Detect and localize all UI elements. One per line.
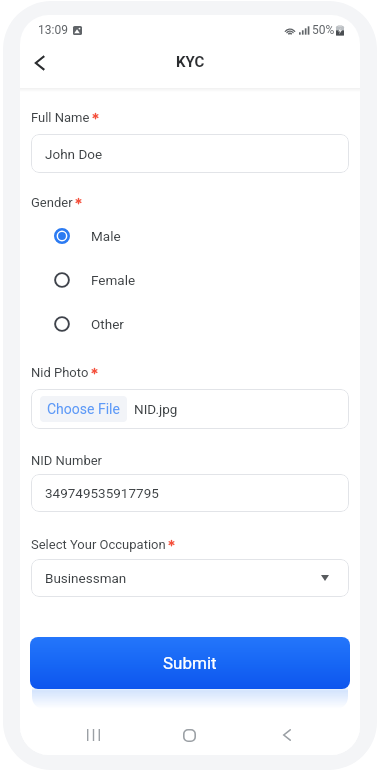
button[interactable]: Female	[31, 258, 349, 302]
button[interactable]: Home	[141, 715, 238, 755]
button[interactable]: Businessman	[31, 559, 349, 597]
staticText: Gender	[31, 195, 73, 210]
button[interactable]: Male	[31, 214, 349, 258]
staticText: Select Your Occupation	[31, 537, 166, 552]
staticText: KYC	[176, 53, 205, 71]
staticText: NID.jpg	[134, 401, 178, 417]
staticText: Other	[91, 316, 124, 332]
button[interactable]: Submit	[30, 637, 350, 689]
button[interactable]: Choose File	[31, 389, 349, 429]
button[interactable]: Back	[238, 715, 335, 755]
button[interactable]: Back	[22, 43, 56, 83]
button[interactable]: Other	[31, 302, 349, 346]
button[interactable]: John Doe	[31, 134, 349, 173]
button[interactable]: 349749535917795	[31, 474, 349, 512]
staticText: Choose File	[47, 401, 120, 417]
staticText: Male	[91, 228, 121, 244]
staticText: Submit	[163, 653, 217, 673]
staticText: Female	[91, 272, 136, 288]
staticText: 13:09	[38, 23, 68, 37]
staticText: NID Number	[31, 453, 103, 468]
staticText: 349749535917795	[45, 485, 159, 501]
staticText: Full Name	[31, 110, 90, 125]
staticText: 50%	[312, 23, 335, 37]
staticText: Nid Photo	[31, 365, 89, 380]
staticText: John Doe	[45, 146, 103, 162]
staticText: Businessman	[45, 570, 127, 586]
button[interactable]: Recent apps	[45, 715, 141, 755]
